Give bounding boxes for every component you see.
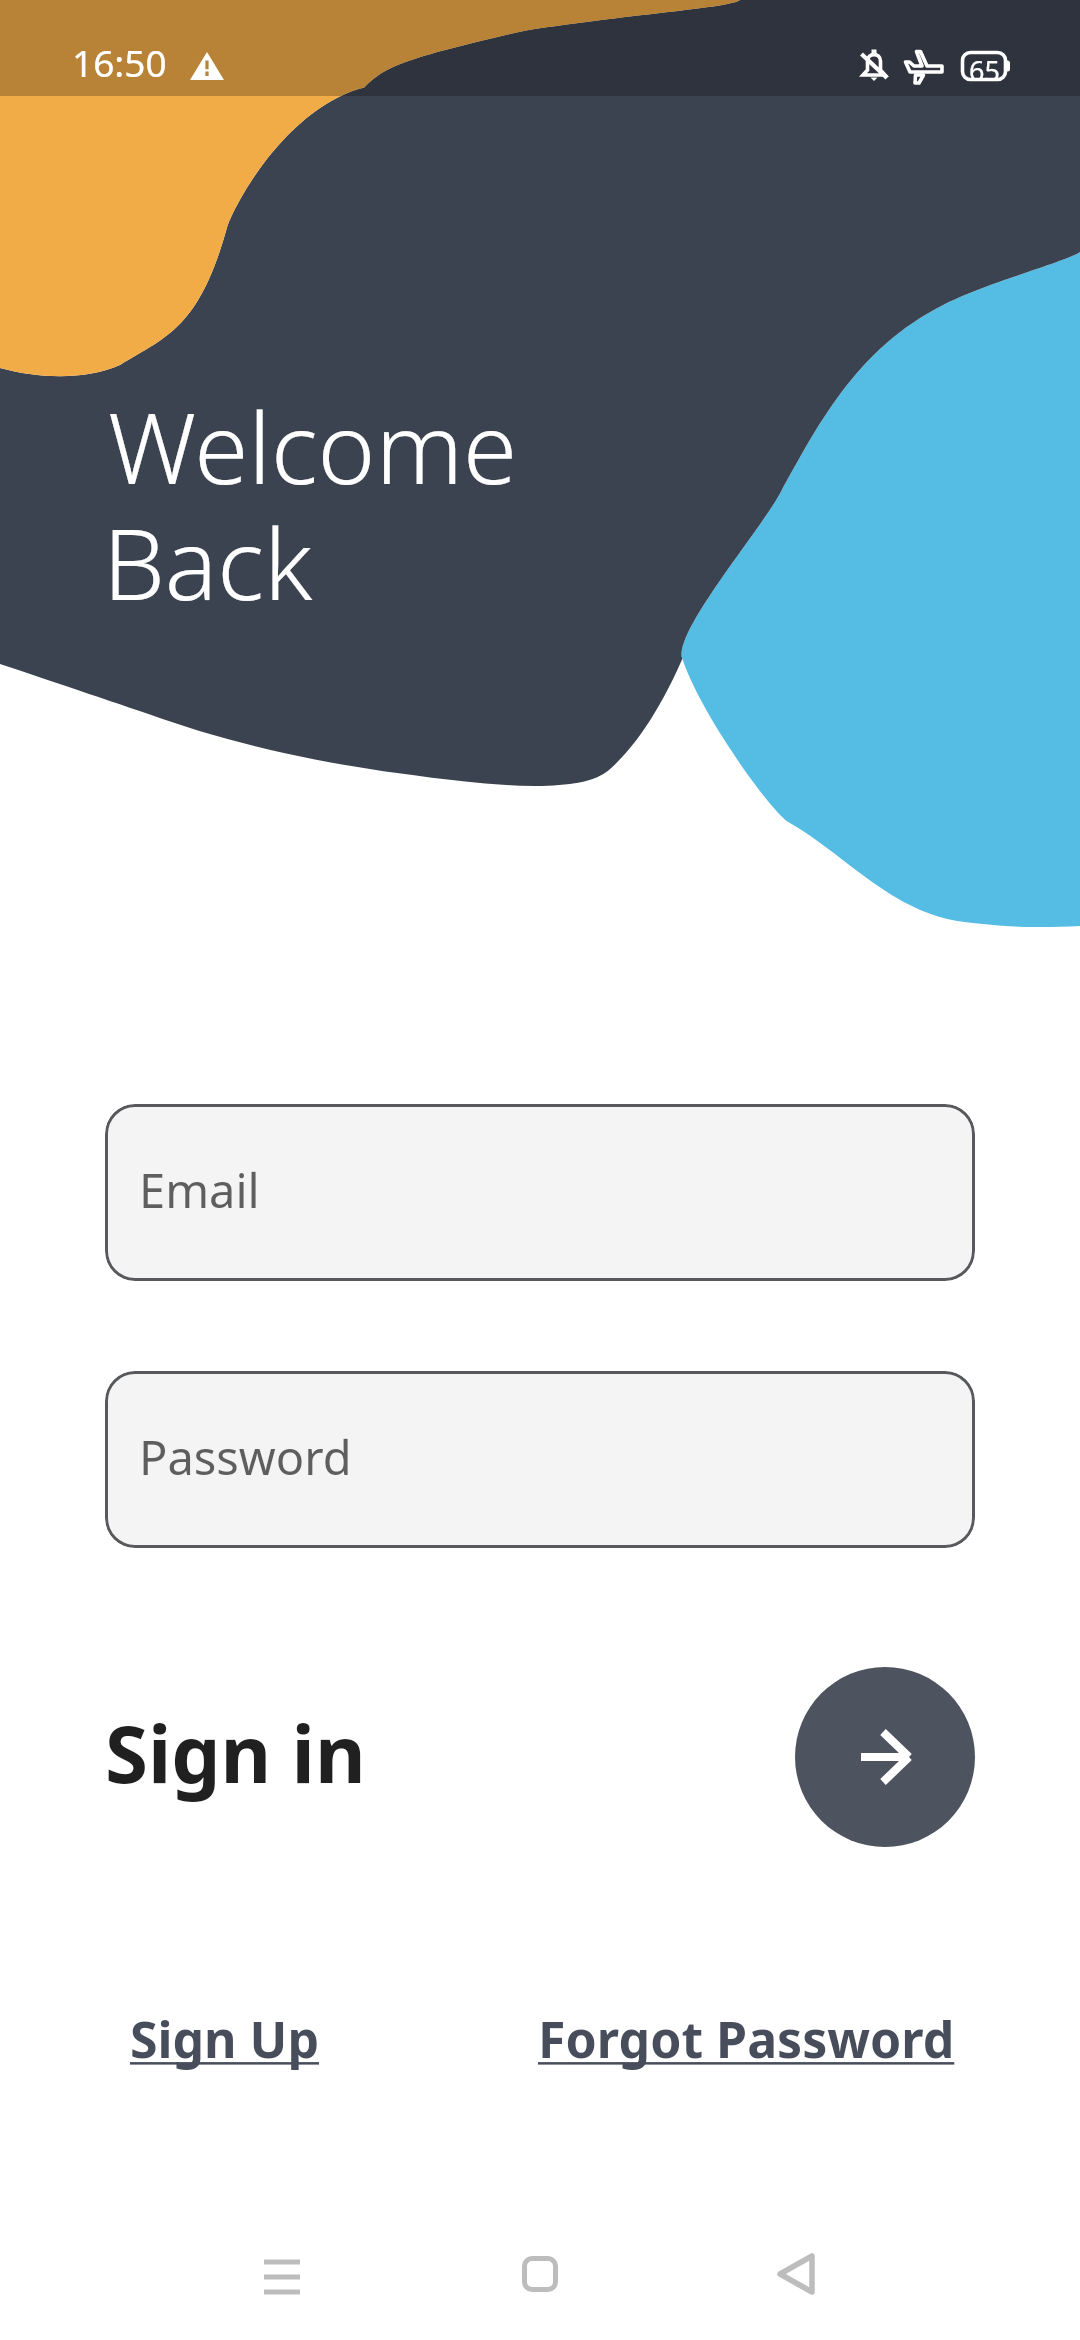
button[interactable]: Sign Up — [130, 2005, 319, 2073]
button[interactable]: Back — [736, 2226, 856, 2322]
button[interactable]: Password — [105, 1371, 975, 1548]
staticText: Email — [139, 1158, 260, 1222]
button[interactable]: Email — [105, 1104, 975, 1281]
staticText: Back — [103, 495, 313, 628]
staticText: Sign Up — [130, 2005, 319, 2073]
button[interactable]: Home — [480, 2226, 600, 2322]
staticText: Sign in — [105, 1700, 366, 1806]
button[interactable]: Forgot Password — [538, 2005, 955, 2073]
staticText: Forgot Password — [538, 2005, 955, 2073]
staticText: 65 — [969, 52, 1000, 89]
staticText: Welcome — [108, 379, 518, 512]
staticText: 16:50 — [72, 37, 167, 87]
staticText: Password — [139, 1425, 352, 1489]
button[interactable]: Sign in — [795, 1667, 975, 1847]
button[interactable]: Recent apps — [222, 2228, 342, 2324]
button[interactable]: Sign in — [105, 1700, 366, 1806]
